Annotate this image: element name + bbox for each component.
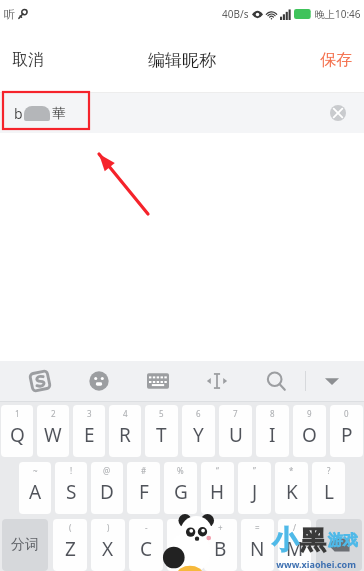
staticText: www.xiaohei.com: [276, 558, 356, 570]
staticText: H: [210, 479, 225, 505]
button[interactable]: Hide keyboard: [306, 361, 358, 401]
button[interactable]: (: [53, 519, 87, 571]
staticText: 6: [196, 408, 201, 419]
staticText: 晚上10:46: [315, 7, 361, 21]
staticText: 5: [159, 408, 164, 419]
staticText: 3: [87, 408, 92, 419]
staticText: M: [286, 536, 304, 562]
button[interactable]: !: [55, 462, 87, 514]
button[interactable]: b: [0, 93, 364, 133]
button[interactable]: 0: [330, 405, 363, 457]
staticText: F: [139, 479, 149, 505]
button[interactable]: -: [129, 519, 163, 571]
staticText: -: [145, 522, 148, 533]
button[interactable]: ): [91, 519, 125, 571]
button[interactable]: Clear text: [326, 101, 350, 125]
button[interactable]: ~: [19, 462, 51, 514]
staticText: 取消: [12, 50, 44, 70]
staticText: ”: [253, 465, 256, 476]
staticText: 1: [15, 408, 20, 419]
button[interactable]: ”: [238, 462, 271, 514]
button[interactable]: Search: [246, 361, 305, 401]
button[interactable]: 3: [73, 405, 105, 457]
button[interactable]: 6: [182, 405, 215, 457]
staticText: 4: [123, 408, 128, 419]
staticText: L: [324, 479, 334, 505]
button[interactable]: 4: [109, 405, 141, 457]
staticText: R: [119, 422, 131, 448]
button[interactable]: _: [167, 519, 200, 571]
staticText: @: [103, 465, 111, 476]
staticText: X: [102, 536, 114, 562]
button[interactable]: #: [127, 462, 160, 514]
staticText: P: [341, 422, 353, 448]
staticText: (: [69, 522, 72, 533]
button[interactable]: “: [201, 462, 234, 514]
button[interactable]: 分词: [2, 519, 48, 571]
staticText: ?: [327, 465, 331, 476]
staticText: #: [141, 465, 147, 476]
staticText: *: [289, 465, 294, 476]
staticText: Z: [65, 536, 76, 562]
staticText: N: [250, 536, 265, 562]
staticText: 编辑昵称: [148, 50, 216, 71]
staticText: 40B/s: [222, 7, 249, 21]
button[interactable]: 9: [293, 405, 326, 457]
staticText: 黑: [300, 524, 326, 557]
staticText: K: [286, 479, 298, 505]
button[interactable]: 取消: [0, 28, 56, 92]
staticText: O: [302, 422, 317, 448]
button[interactable]: =: [241, 519, 274, 571]
staticText: %: [177, 465, 184, 476]
button[interactable]: 2: [37, 405, 69, 457]
staticText: C: [140, 536, 153, 562]
button[interactable]: %: [164, 462, 197, 514]
button[interactable]: Backspace: [316, 519, 362, 571]
staticText: A: [29, 479, 42, 505]
staticText: S: [66, 479, 77, 505]
button[interactable]: Emoji: [69, 361, 128, 401]
staticText: 游戏: [328, 531, 358, 550]
staticText: 小: [272, 524, 298, 557]
button[interactable]: *: [275, 462, 308, 514]
staticText: +: [218, 522, 223, 533]
staticText: ): [107, 522, 110, 533]
staticText: Y: [193, 422, 204, 448]
staticText: W: [44, 422, 62, 448]
staticText: ~: [33, 465, 38, 476]
staticText: _: [182, 522, 186, 533]
button[interactable]: 8: [256, 405, 289, 457]
button[interactable]: Input method: [10, 361, 69, 401]
staticText: 2: [51, 408, 56, 419]
staticText: /: [293, 522, 296, 533]
button[interactable]: +: [204, 519, 237, 571]
staticText: “: [216, 465, 219, 476]
staticText: E: [84, 422, 95, 448]
button[interactable]: 7: [219, 405, 252, 457]
staticText: B: [214, 536, 227, 562]
staticText: U: [229, 422, 243, 448]
staticText: !: [70, 465, 73, 476]
staticText: V: [178, 536, 190, 562]
staticText: 分词: [11, 536, 39, 554]
staticText: 7: [233, 408, 238, 419]
button[interactable]: 1: [1, 405, 33, 457]
staticText: I: [269, 422, 276, 448]
button[interactable]: 5: [145, 405, 178, 457]
button[interactable]: /: [278, 519, 311, 571]
staticText: 9: [307, 408, 312, 419]
button[interactable]: Keyboard layout: [128, 361, 187, 401]
staticText: b: [14, 104, 23, 123]
staticText: =: [255, 522, 260, 533]
button[interactable]: @: [91, 462, 123, 514]
button[interactable]: Move cursor: [187, 361, 246, 401]
staticText: 華: [52, 105, 66, 123]
staticText: 保存: [320, 50, 352, 70]
staticText: Q: [10, 422, 25, 448]
staticText: T: [156, 422, 167, 448]
staticText: 8: [270, 408, 275, 419]
button[interactable]: 保存: [308, 28, 364, 92]
button[interactable]: ?: [312, 462, 345, 514]
staticText: D: [100, 479, 114, 505]
staticText: 0: [344, 408, 349, 419]
